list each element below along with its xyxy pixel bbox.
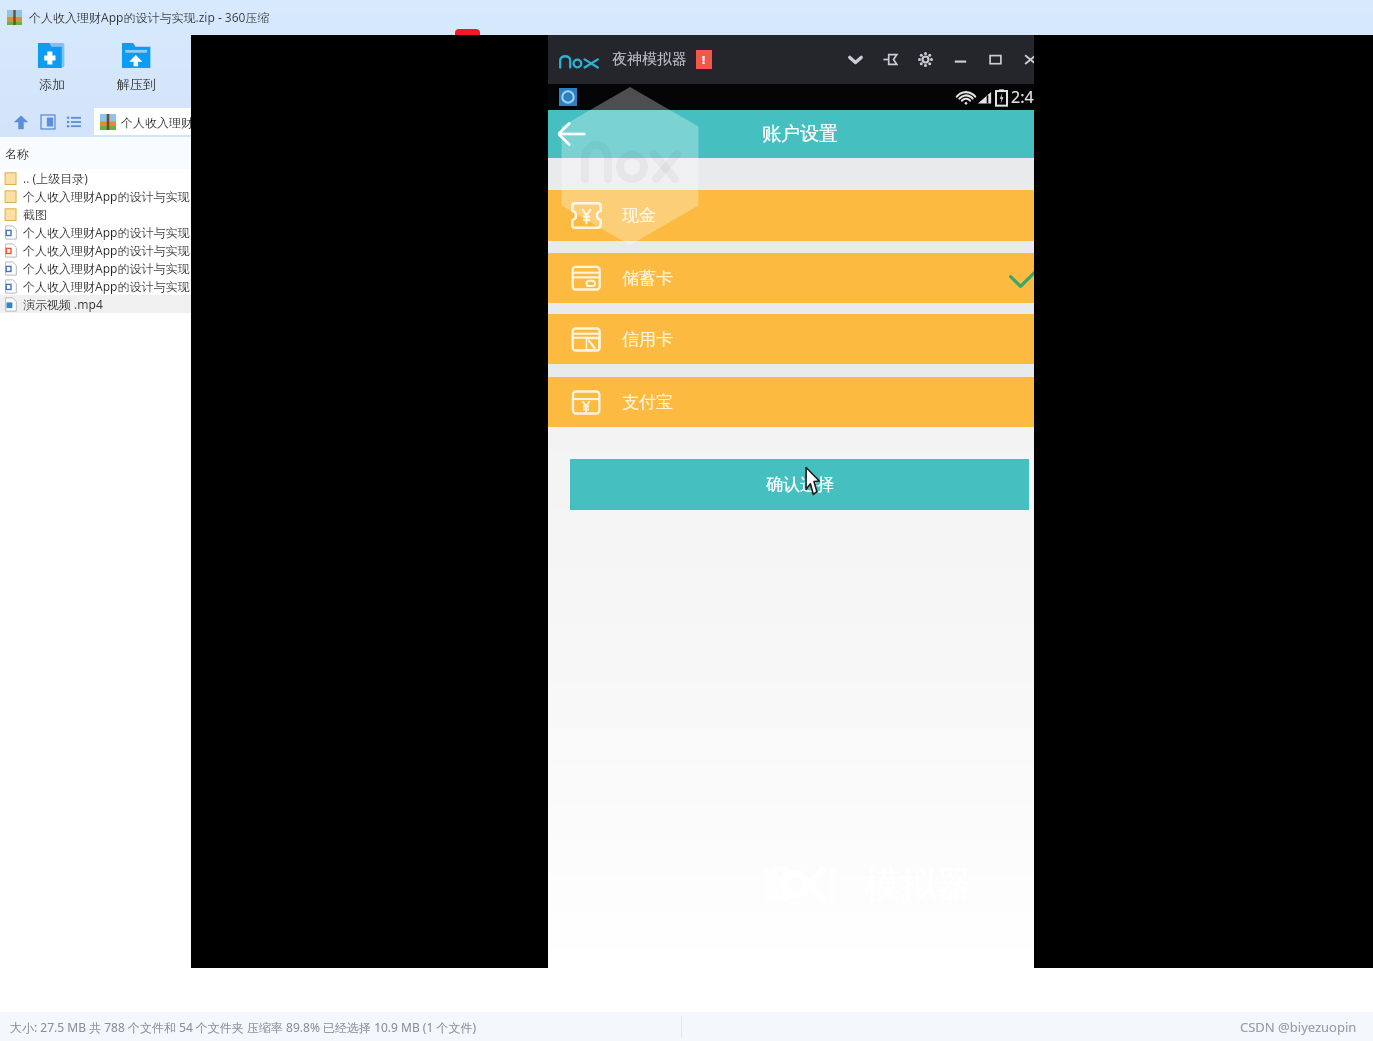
staticText: 储蓄卡 bbox=[622, 268, 673, 289]
button[interactable]: 演示视频 .mp4 bbox=[0, 295, 191, 313]
staticText: .. (上级目录) bbox=[23, 170, 88, 186]
staticText: 演示视频 .mp4 bbox=[23, 296, 103, 312]
button[interactable]: 截图 bbox=[0, 205, 191, 223]
button[interactable]: 确认选择 bbox=[570, 459, 1029, 510]
button[interactable]: .. (上级目录) bbox=[0, 169, 191, 187]
button[interactable]: 现金 bbox=[548, 190, 1034, 241]
staticText: 名称 bbox=[5, 146, 29, 161]
staticText: 信用卡 bbox=[622, 329, 673, 350]
staticText: 个人收入理财App的设计与实现 bbox=[121, 114, 288, 130]
staticText: 解压到 bbox=[117, 76, 156, 92]
button[interactable]: Expand bbox=[838, 35, 873, 84]
staticText: 截图 bbox=[23, 207, 47, 222]
button[interactable]: 信用卡 bbox=[548, 314, 1034, 364]
staticText: 个人收入理财App的设计与实现 bbox=[23, 188, 190, 204]
button[interactable]: 个人收入理财App的设计与实现 bbox=[0, 277, 191, 295]
button[interactable]: 个人收入理财App的设计与实现 bbox=[0, 187, 191, 205]
staticText: 2:4 bbox=[1011, 86, 1034, 108]
button[interactable]: 个人收入理财App的设计与实现 bbox=[0, 259, 191, 277]
button[interactable]: Minimize bbox=[943, 35, 978, 84]
button[interactable]: 个人收入理财App的设计与实现 bbox=[0, 223, 191, 241]
staticText: 大小: 27.5 MB 共 788 个文件和 54 个文件夹 压缩率 89.8%… bbox=[10, 1019, 477, 1035]
staticText: 个人收入理财App的设计与实现 bbox=[23, 260, 190, 276]
button[interactable]: Close bbox=[1013, 35, 1034, 84]
button[interactable]: 解压到 bbox=[106, 40, 166, 92]
button[interactable]: 个人收入理财App的设计与实现 bbox=[0, 241, 191, 259]
staticText: 个人收入理财App的设计与实现 bbox=[23, 278, 190, 294]
button[interactable]: 支付宝 bbox=[548, 377, 1034, 427]
button[interactable]: List view bbox=[66, 114, 82, 130]
button[interactable]: Toggle preview pane bbox=[40, 114, 56, 130]
staticText: 现金 bbox=[622, 205, 656, 226]
staticText: 支付宝 bbox=[622, 392, 673, 413]
staticText: 个人收入理财App的设计与实现.zip - 360压缩 bbox=[29, 9, 270, 25]
staticText: 个人收入理财App的设计与实现 bbox=[23, 224, 190, 240]
button[interactable]: Settings bbox=[908, 35, 943, 84]
button[interactable]: 添加 bbox=[22, 40, 82, 92]
staticText: 账户设置 bbox=[762, 122, 838, 146]
button[interactable]: 一 bbox=[190, 40, 250, 92]
staticText: 确认选择 bbox=[766, 474, 834, 495]
staticText: ! bbox=[702, 52, 706, 67]
staticText: 夜神模拟器 bbox=[612, 50, 687, 69]
button[interactable]: Pin bbox=[873, 35, 908, 84]
staticText: 个人收入理财App的设计与实现 bbox=[23, 242, 190, 258]
staticText: 添加 bbox=[39, 76, 65, 92]
button[interactable]: Maximize bbox=[978, 35, 1013, 84]
button[interactable]: 储蓄卡 bbox=[548, 253, 1034, 303]
button[interactable]: Up one level bbox=[12, 113, 30, 131]
button[interactable]: Back bbox=[548, 110, 596, 158]
staticText: CSDN @biyezuopin bbox=[1240, 1018, 1357, 1036]
